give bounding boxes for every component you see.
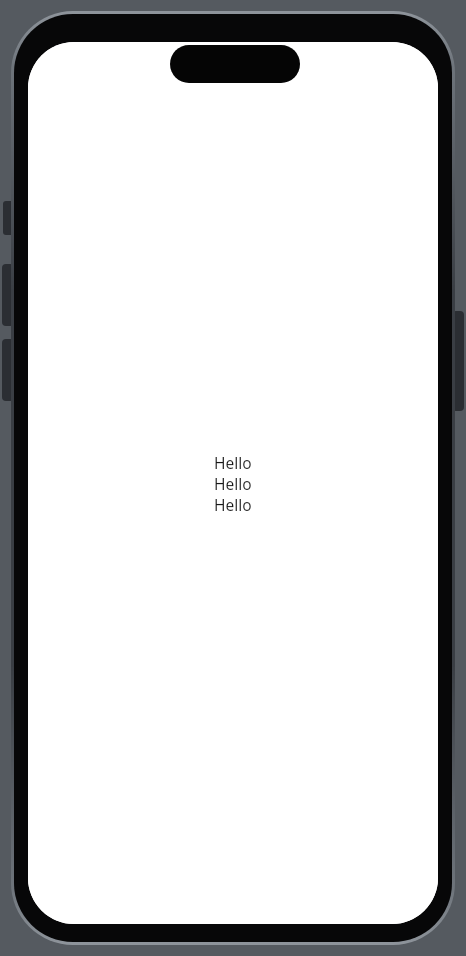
- staticText: Hello: [214, 494, 252, 515]
- staticText: Hello: [214, 452, 252, 473]
- staticText: Hello: [214, 473, 252, 494]
